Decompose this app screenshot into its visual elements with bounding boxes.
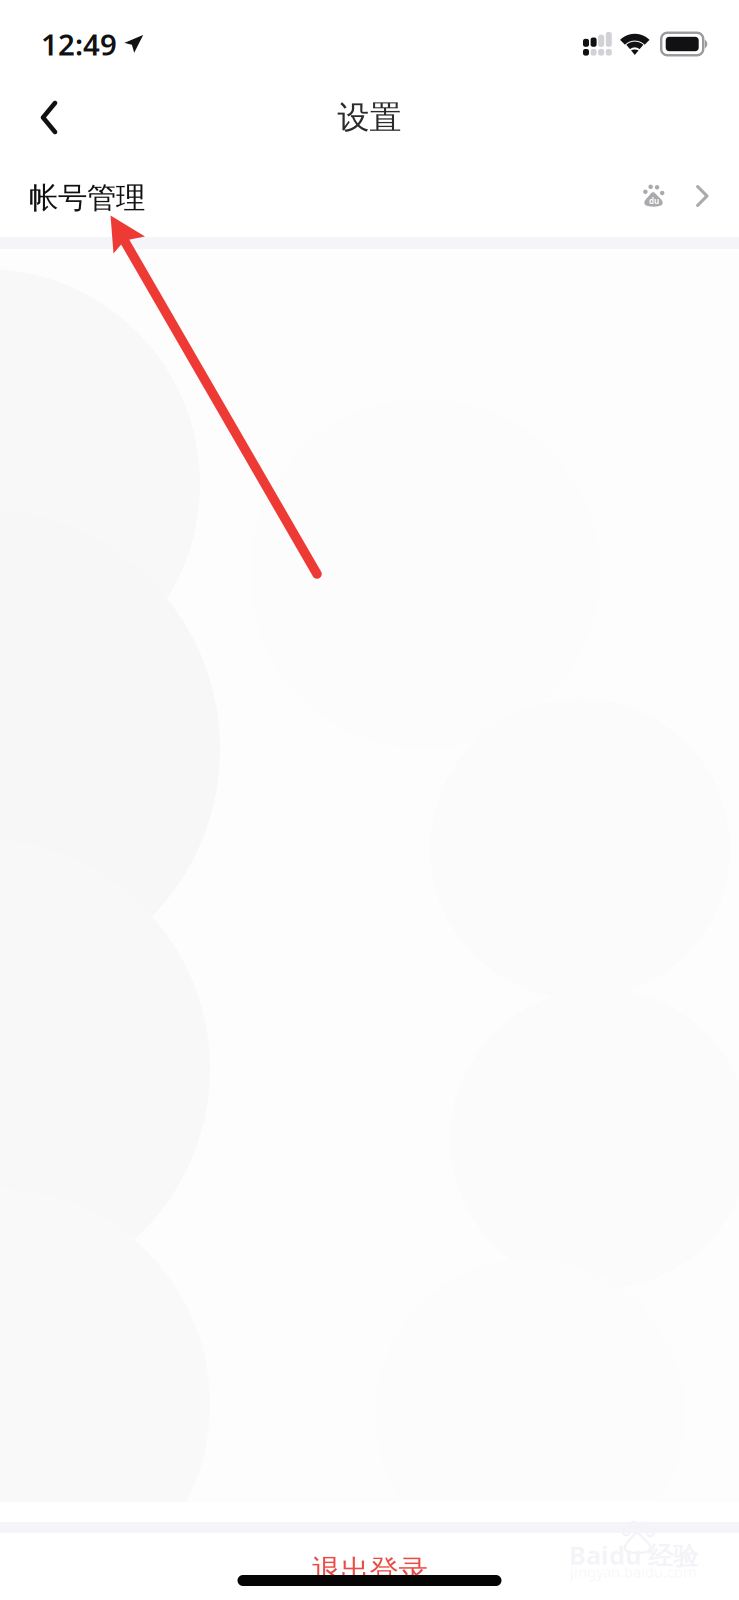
staticText: jingyan.baidu.com	[570, 1562, 697, 1581]
button[interactable]: 退出登录	[0, 1545, 739, 1597]
button[interactable]: Back	[17, 86, 81, 148]
staticText: 退出登录	[311, 1553, 427, 1589]
staticText: 帐号管理	[29, 180, 145, 216]
staticText: 12:49	[41, 24, 117, 63]
staticText: 设置	[337, 98, 401, 137]
staticText: du	[649, 196, 659, 206]
staticText: Baidu 经验	[569, 1538, 698, 1572]
button[interactable]: 帐号管理	[0, 155, 739, 237]
